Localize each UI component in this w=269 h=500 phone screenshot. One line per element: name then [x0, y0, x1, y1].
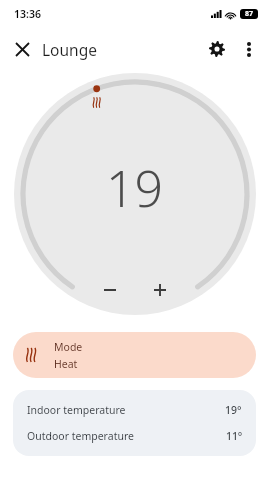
- staticText: 87: [245, 9, 254, 19]
- button[interactable]: Close: [6, 33, 38, 65]
- staticText: Mode: [54, 340, 83, 354]
- staticText: Outdoor temperature: [27, 429, 134, 443]
- button[interactable]: Outdoor temperature: [13, 423, 256, 449]
- staticText: 19: [106, 154, 164, 222]
- button[interactable]: Indoor temperature: [13, 397, 256, 423]
- staticText: Indoor temperature: [27, 403, 126, 417]
- button[interactable]: Settings: [200, 32, 234, 66]
- staticText: Lounge: [42, 39, 97, 60]
- staticText: Heat: [54, 357, 78, 371]
- staticText: 11º: [226, 429, 242, 443]
- button[interactable]: More options: [234, 34, 264, 64]
- staticText: 19°: [225, 403, 242, 417]
- button[interactable]: Decrease temperature: [92, 272, 128, 308]
- button[interactable]: Increase temperature: [142, 272, 178, 308]
- staticText: 13:36: [14, 7, 41, 21]
- button[interactable]: Mode: [13, 332, 256, 378]
